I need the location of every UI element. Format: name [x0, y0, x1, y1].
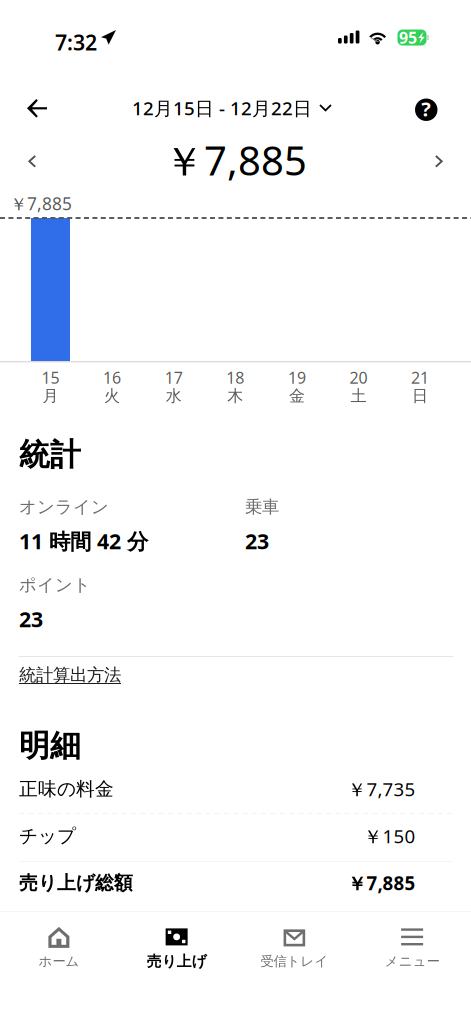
- button[interactable]: 売り上げ: [118, 912, 236, 972]
- staticText: 正味の料金: [19, 777, 114, 800]
- staticText: 16: [103, 367, 121, 388]
- button[interactable]: Back: [15, 87, 59, 130]
- staticText: 日: [412, 386, 428, 406]
- button[interactable]: ホーム: [0, 912, 118, 972]
- staticText: 統計: [19, 436, 81, 474]
- staticText: ポイント: [19, 574, 91, 596]
- staticText: 受信トレイ: [260, 953, 328, 970]
- staticText: 売り上げ総額: [19, 871, 133, 894]
- staticText: ￥7,885: [347, 871, 415, 895]
- button[interactable]: 統計算出方法: [19, 666, 123, 686]
- staticText: ￥7,735: [347, 777, 415, 801]
- button[interactable]: Next week: [422, 143, 455, 180]
- staticText: 11 時間 42 分: [19, 527, 148, 555]
- staticText: オンライン: [19, 496, 109, 518]
- staticText: 木: [227, 386, 243, 406]
- button[interactable]: メニュー: [353, 912, 471, 972]
- button[interactable]: 受信トレイ: [235, 912, 353, 972]
- staticText: 19: [288, 367, 306, 388]
- staticText: 20: [349, 367, 367, 388]
- staticText: ?: [421, 95, 431, 122]
- staticText: 21: [411, 367, 429, 388]
- staticText: 売り上げ: [147, 952, 207, 970]
- staticText: 統計算出方法: [19, 664, 121, 686]
- staticText: 7:32: [55, 28, 97, 56]
- staticText: ￥7,885: [164, 133, 307, 187]
- staticText: 23: [19, 605, 43, 633]
- staticText: 17: [165, 367, 183, 388]
- button[interactable]: 12月15日 - 12月22日: [124, 88, 339, 128]
- staticText: 12月15日 - 12月22日: [132, 96, 312, 120]
- staticText: 乗車: [245, 496, 279, 518]
- staticText: 95: [399, 27, 417, 48]
- staticText: 18: [226, 367, 244, 388]
- button[interactable]: Previous week: [16, 143, 48, 180]
- staticText: 火: [104, 386, 120, 406]
- staticText: 月: [42, 386, 58, 406]
- staticText: ￥150: [363, 824, 415, 848]
- staticText: チップ: [19, 824, 76, 847]
- staticText: 15: [41, 367, 59, 388]
- staticText: メニュー: [385, 953, 440, 970]
- staticText: ホーム: [38, 953, 79, 970]
- staticText: 水: [166, 386, 182, 406]
- staticText: 金: [289, 386, 305, 406]
- staticText: 23: [245, 527, 269, 555]
- staticText: 明細: [19, 727, 81, 765]
- button[interactable]: Help: [403, 86, 449, 133]
- staticText: ￥7,885: [10, 192, 72, 215]
- staticText: 土: [350, 386, 366, 406]
